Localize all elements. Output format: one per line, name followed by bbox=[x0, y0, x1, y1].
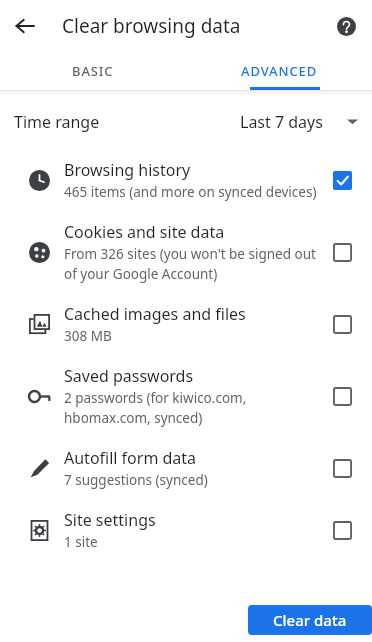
staticText: Autofill form data bbox=[64, 447, 197, 469]
staticText: Browsing history bbox=[64, 159, 191, 181]
staticText: Saved passwords bbox=[64, 365, 194, 387]
button[interactable]: Cached images and files bbox=[0, 293, 372, 355]
button[interactable]: Cached images and files bbox=[322, 304, 362, 344]
button[interactable]: BASIC bbox=[0, 52, 186, 90]
button[interactable]: Browsing history bbox=[0, 149, 372, 211]
button[interactable]: Browsing history bbox=[322, 160, 362, 200]
staticText: 308 MB bbox=[64, 327, 112, 345]
button[interactable]: Time range bbox=[0, 94, 372, 149]
button[interactable]: Autofill form data bbox=[322, 448, 362, 488]
button[interactable]: Clear data bbox=[248, 605, 372, 635]
staticText: 1 site bbox=[64, 533, 98, 551]
button[interactable]: Help bbox=[328, 8, 364, 44]
staticText: 7 suggestions (synced) bbox=[64, 471, 208, 489]
button[interactable]: Saved passwords bbox=[0, 355, 372, 437]
staticText: Last 7 days bbox=[240, 111, 323, 133]
staticText: of your Google Account) bbox=[64, 265, 218, 283]
staticText: Site settings bbox=[64, 509, 156, 531]
button[interactable]: Cookies and site data bbox=[322, 232, 362, 272]
staticText: Clear data bbox=[273, 610, 347, 630]
staticText: hbomax.com, synced) bbox=[64, 409, 203, 427]
staticText: 465 items (and more on synced devices) bbox=[64, 183, 317, 201]
staticText: Cookies and site data bbox=[64, 221, 225, 243]
staticText: BASIC bbox=[72, 62, 114, 80]
staticText: Time range bbox=[14, 111, 100, 133]
staticText: From 326 sites (you won't be signed out bbox=[64, 245, 316, 263]
button[interactable]: Saved passwords bbox=[322, 376, 362, 416]
button[interactable]: Site settings bbox=[0, 499, 372, 561]
button[interactable]: Autofill form data bbox=[0, 437, 372, 499]
staticText: ADVANCED bbox=[241, 62, 318, 80]
button[interactable]: ADVANCED bbox=[186, 52, 372, 90]
button[interactable]: Back bbox=[6, 7, 44, 45]
staticText: 2 passwords (for kiwico.com, bbox=[64, 389, 247, 407]
staticText: Clear browsing data bbox=[62, 13, 241, 39]
staticText: Cached images and files bbox=[64, 303, 246, 325]
button[interactable]: Cookies and site data bbox=[0, 211, 372, 293]
button[interactable]: Site settings bbox=[322, 510, 362, 550]
